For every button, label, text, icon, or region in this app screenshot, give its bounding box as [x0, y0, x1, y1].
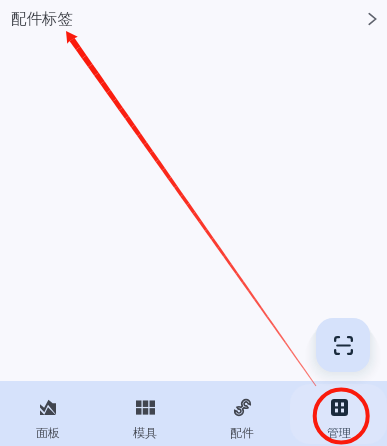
staticText: 配件	[230, 425, 254, 440]
button[interactable]: 配件标签	[0, 0, 387, 38]
other: More	[365, 12, 379, 26]
staticText: 管理	[327, 425, 351, 440]
button[interactable]: 面板	[0, 381, 96, 446]
staticText: 面板	[36, 425, 60, 440]
button[interactable]: Scan	[316, 318, 370, 372]
staticText: 模具	[133, 425, 157, 440]
button[interactable]: 配件	[193, 381, 290, 446]
button[interactable]: 模具	[96, 381, 193, 446]
button[interactable]: 管理	[290, 381, 387, 446]
staticText: 配件标签	[11, 9, 73, 29]
